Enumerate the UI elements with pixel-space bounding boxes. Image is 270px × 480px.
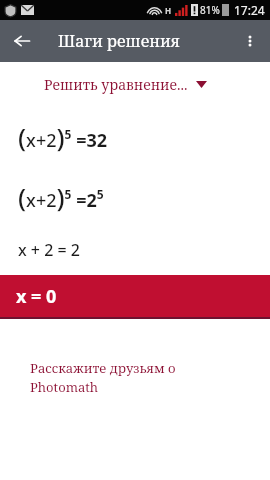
staticText: (x+2)5 =25 [18,179,104,214]
staticText: Расскажите друзьям о Photomath [30,359,176,396]
staticText: x + 2 = 2 [18,239,80,261]
button[interactable]: Расскажите друзьям о Photomath [0,359,270,396]
button[interactable]: x = 0 [0,275,270,317]
staticText: Шаги решения [58,30,180,52]
button[interactable]: Решить уравнение... [0,62,270,106]
staticText: H [165,5,172,16]
button[interactable]: (x+2)5 =25 [0,166,270,226]
button[interactable]: x + 2 = 2 [0,226,270,274]
staticText: Решить уравнение... [44,75,188,94]
staticText: (x+2)5 =32 [18,119,108,154]
button[interactable]: Back [4,23,40,59]
staticText: 17:24 [234,2,265,18]
button[interactable]: (x+2)5 =32 [0,106,270,166]
staticText: x = 0 [16,284,57,309]
staticText: 81% [200,3,220,17]
button[interactable]: More options [232,23,268,59]
